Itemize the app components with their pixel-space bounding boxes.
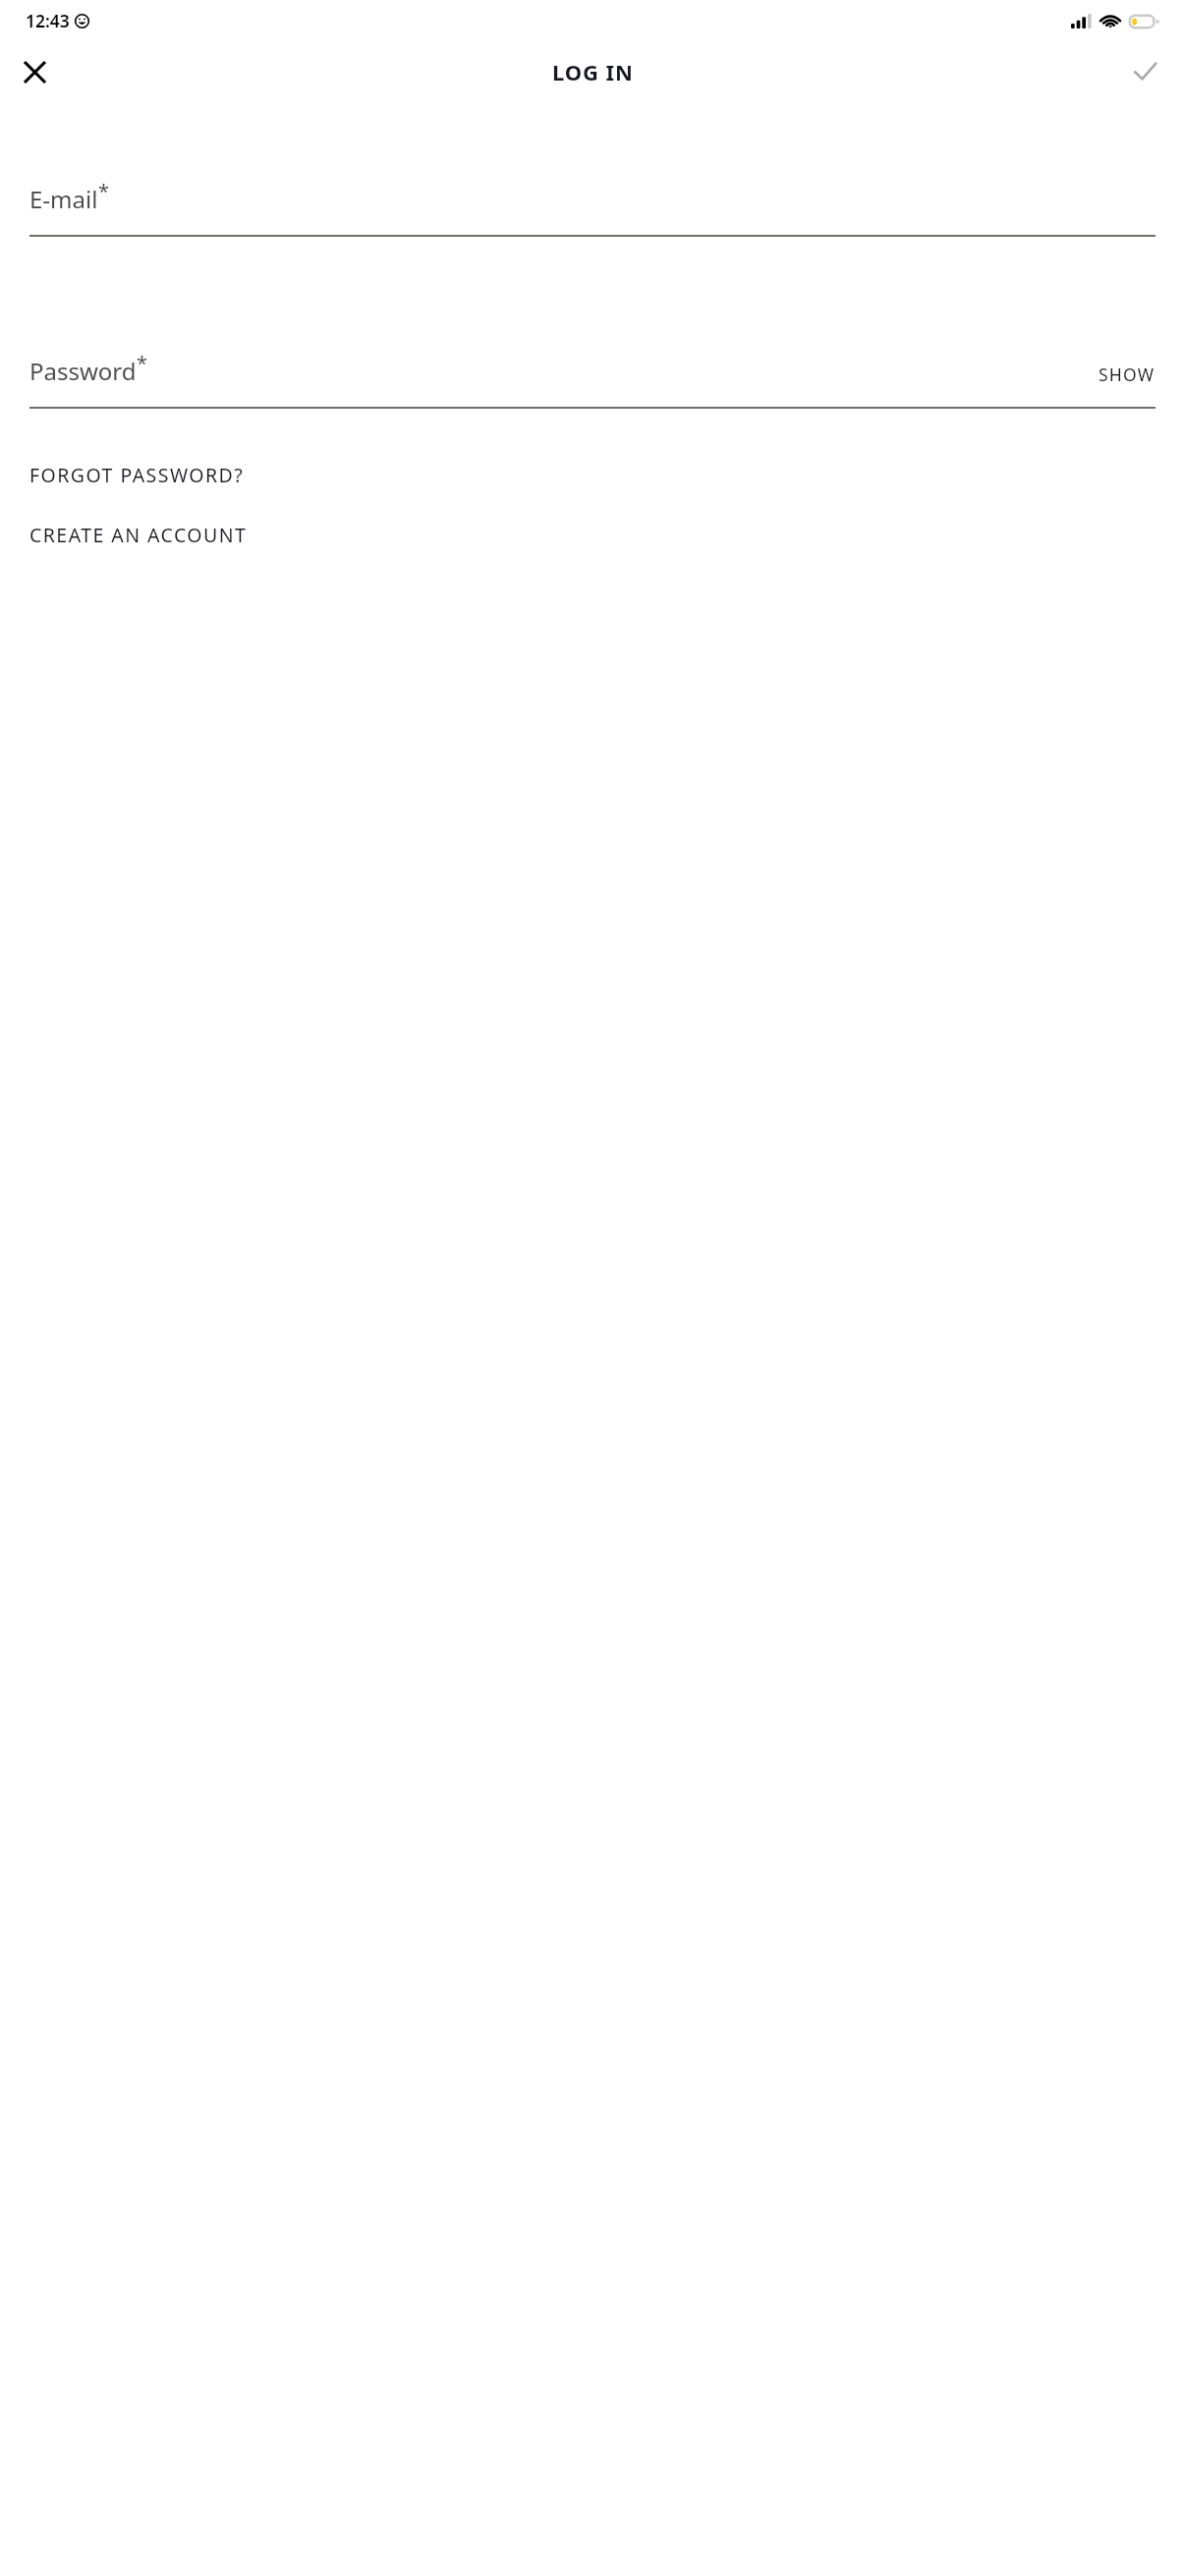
staticText: SHOW (1099, 363, 1156, 386)
staticText: CREATE AN ACCOUNT (29, 522, 248, 548)
button[interactable]: E-mail (29, 183, 1156, 237)
staticText: E-mail (29, 183, 98, 215)
button[interactable]: CREATE AN ACCOUNT (0, 518, 1185, 552)
staticText: 12:43 (26, 9, 70, 32)
staticText: FORGOT PASSWORD? (29, 462, 245, 488)
button[interactable]: Close (12, 49, 57, 94)
button[interactable]: Confirm (1122, 49, 1167, 94)
staticText: LOG IN (552, 57, 634, 86)
staticText: * (98, 178, 110, 204)
staticText: * (137, 350, 148, 376)
button[interactable]: FORGOT PASSWORD? (0, 458, 1185, 492)
button[interactable]: SHOW (1087, 363, 1156, 387)
staticText: Password (29, 355, 137, 387)
button[interactable]: Password (29, 355, 1156, 409)
